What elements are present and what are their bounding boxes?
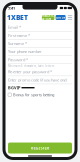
staticText: Surname * (8, 41, 27, 46)
button[interactable]: LOG IN (56, 15, 66, 20)
staticText: Bonus for sports betting (13, 92, 54, 97)
staticText: Re-enter your password * (8, 69, 52, 74)
staticText: 9:41 (8, 5, 15, 11)
staticText: Minimum 6 characters, Latin letters (8, 64, 54, 68)
staticText: Password * (8, 57, 28, 62)
staticText: REGISTER (30, 145, 49, 151)
staticText: BGVIP (8, 85, 20, 90)
button[interactable]: Menu (67, 14, 73, 20)
staticText: Enter promo code (if you have one) (8, 77, 67, 82)
staticText: REGISTRATION (42, 14, 54, 21)
staticText: First name * (8, 33, 30, 38)
staticText: 1XBET (7, 13, 28, 22)
staticText: LOG IN (56, 16, 65, 19)
button[interactable]: REGISTER (8, 142, 72, 153)
button[interactable]: 1xBet home (7, 13, 28, 22)
staticText: Email * (8, 25, 21, 30)
staticText: Your phone number (8, 49, 42, 54)
button[interactable]: REGISTRATION (42, 15, 54, 20)
